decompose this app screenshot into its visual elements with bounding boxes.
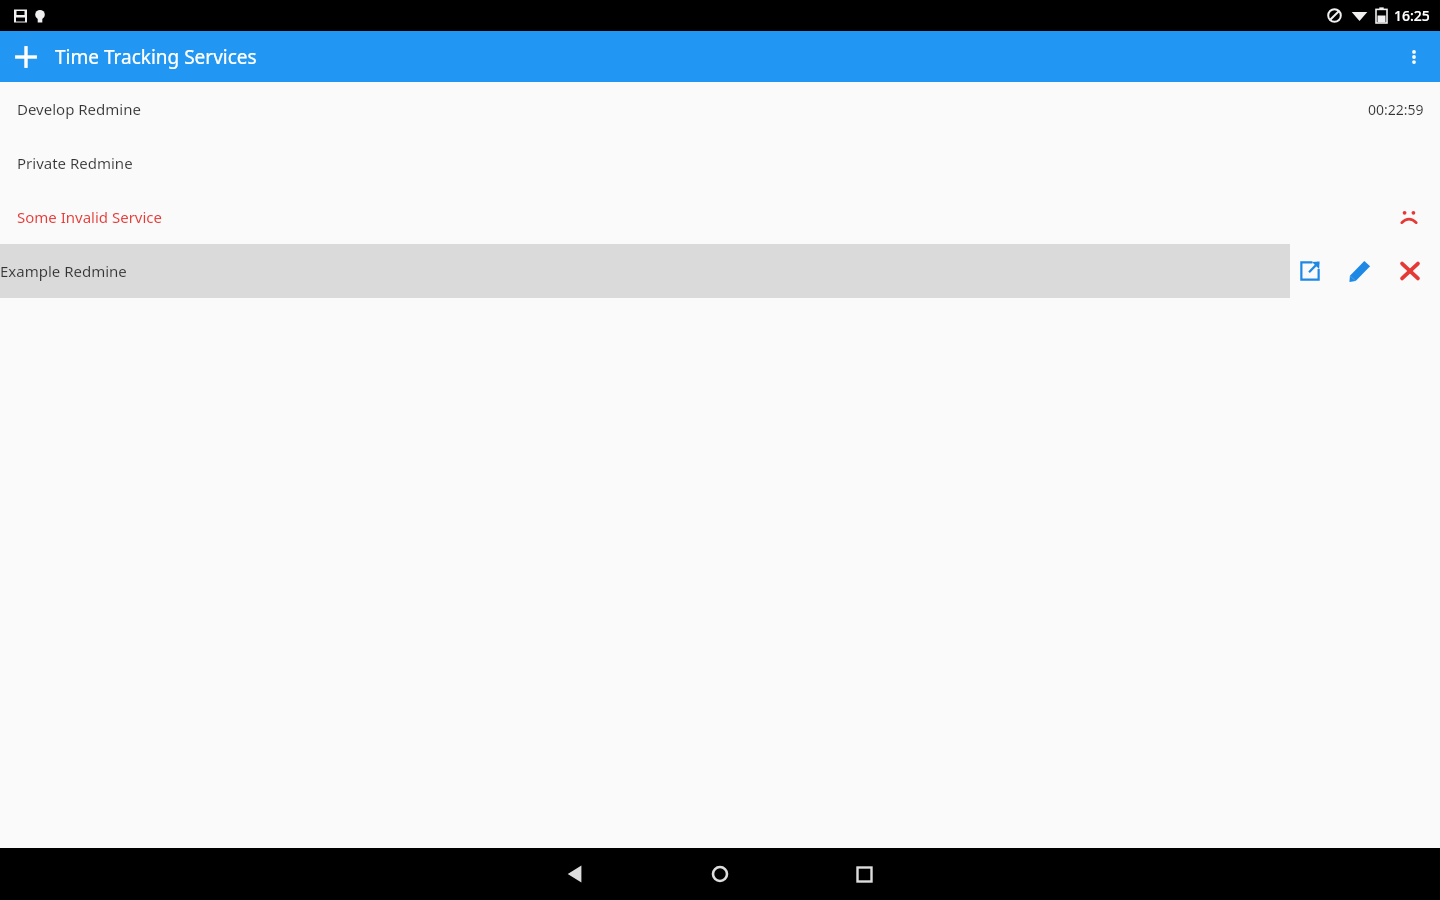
button[interactable]: Example Redmine [0,244,1290,298]
button[interactable]: Private Redmine [0,136,1440,190]
button[interactable]: Some Invalid Service [0,190,1440,244]
button[interactable]: More options [1388,31,1440,82]
button[interactable]: Invalid service [1394,202,1424,232]
button[interactable]: Develop Redmine [0,82,1440,136]
button[interactable]: Back [552,850,600,898]
staticText: 16:25 [1394,6,1430,25]
button[interactable]: Add service [0,31,52,82]
button[interactable]: Open in browser [1288,249,1332,293]
staticText: Time Tracking Services [55,44,257,70]
staticText: Develop Redmine [17,99,141,119]
staticText: Private Redmine [17,153,133,173]
staticText: Some Invalid Service [17,207,162,227]
button[interactable]: Delete [1388,249,1432,293]
staticText: Example Redmine [0,261,127,281]
button[interactable]: Home [696,850,744,898]
button[interactable]: Edit [1338,249,1382,293]
button[interactable]: Recent apps [840,850,888,898]
staticText: 00:22:59 [1368,100,1424,119]
